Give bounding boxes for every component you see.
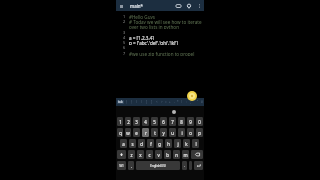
staticText: e [135, 130, 138, 136]
button[interactable]: a [120, 139, 127, 148]
button[interactable]: l [192, 139, 199, 148]
button[interactable]: v [155, 150, 162, 159]
staticText: ; [190, 100, 191, 104]
button[interactable]: 0 [196, 117, 203, 126]
staticText: , [131, 163, 132, 168]
button[interactable]: Enter [194, 161, 203, 170]
button[interactable]: Run [185, 2, 193, 10]
staticText: a = [1,2,3,4] [129, 35, 154, 40]
button[interactable]: = [164, 98, 168, 106]
button[interactable]: ) [139, 98, 144, 106]
button[interactable]: k [183, 139, 190, 148]
staticText: f [150, 141, 152, 147]
staticText: d [140, 141, 143, 147]
staticText: . [184, 163, 185, 168]
button[interactable]: 5 [151, 117, 158, 126]
staticText: j [177, 141, 179, 147]
button[interactable]: j [174, 139, 181, 148]
button[interactable]: u [169, 128, 176, 137]
button[interactable]: 6 [160, 117, 167, 126]
button[interactable]: ' [192, 98, 196, 106]
staticText: < [156, 100, 158, 104]
button[interactable]: 3 [133, 117, 140, 126]
staticText: u [171, 130, 174, 136]
staticText: x [139, 152, 142, 158]
staticText: English(US) [150, 164, 166, 168]
button[interactable]: 2 [125, 117, 131, 126]
button[interactable]: ; [188, 98, 192, 106]
button[interactable]: > [159, 98, 164, 106]
button[interactable]: More options [195, 2, 203, 10]
staticText: 6 [123, 45, 126, 50]
button[interactable]: / [180, 98, 184, 106]
button[interactable]: ] [149, 98, 154, 106]
button[interactable]: y [160, 128, 167, 137]
button[interactable]: d [138, 139, 145, 148]
button[interactable]: < [154, 98, 159, 106]
button[interactable]: x [137, 150, 144, 159]
button[interactable]: Save [174, 2, 182, 10]
button[interactable]: Keyboard settings [172, 110, 176, 114]
button[interactable]: p [196, 128, 203, 137]
button[interactable]: !#1 [117, 161, 126, 170]
staticText: 4 [144, 119, 147, 125]
button[interactable]: Shift [117, 150, 126, 159]
staticText: a [122, 141, 125, 147]
staticText: #Hello Guys [129, 14, 156, 19]
button[interactable]: 4 [142, 117, 149, 126]
button[interactable]: Menu [117, 2, 125, 10]
staticText: g [158, 141, 161, 147]
button[interactable]: i [178, 128, 185, 137]
staticText: tab [118, 100, 123, 104]
button[interactable]: # [200, 98, 204, 106]
staticText: n [175, 152, 178, 158]
staticText: y [162, 130, 165, 136]
button[interactable]: { [124, 98, 129, 106]
button[interactable]: " [196, 98, 200, 106]
button[interactable]: 1 [117, 117, 123, 126]
button[interactable]: z [128, 150, 135, 159]
staticText: i [181, 130, 183, 136]
button[interactable]: w [125, 128, 131, 137]
button[interactable]: o [187, 128, 194, 137]
button[interactable]: c [146, 150, 153, 159]
button[interactable]: * [176, 98, 180, 106]
button[interactable]: r [142, 128, 149, 137]
button[interactable]: b [164, 150, 171, 159]
button[interactable]: 8 [178, 117, 185, 126]
staticText: / [181, 100, 183, 104]
staticText: } [131, 100, 133, 104]
staticText: # Today we will see how to iterate [129, 19, 202, 24]
button[interactable]: } [129, 98, 134, 106]
button[interactable]: f [147, 139, 154, 148]
button[interactable]: tab [118, 100, 123, 104]
button[interactable]: , [128, 161, 134, 170]
button[interactable]: 9 [187, 117, 194, 126]
button[interactable] [189, 161, 192, 170]
button[interactable]: : [184, 98, 188, 106]
button[interactable]: [ [144, 98, 149, 106]
button[interactable]: m [182, 150, 189, 159]
staticText: = [165, 100, 167, 104]
staticText: 3 [135, 119, 138, 125]
button[interactable]: e [133, 128, 140, 137]
button[interactable]: + [168, 98, 172, 106]
button[interactable]: 7 [169, 117, 176, 126]
button[interactable]: g [156, 139, 163, 148]
button[interactable]: English(US) [136, 161, 180, 170]
button[interactable]: q [117, 128, 123, 137]
button[interactable]: . [182, 161, 187, 170]
staticText: 1 [119, 119, 122, 125]
button[interactable]: s [129, 139, 136, 148]
button[interactable]: ( [134, 98, 139, 106]
staticText: 8 [180, 119, 183, 125]
button[interactable]: t [151, 128, 158, 137]
staticText: 7 [123, 51, 126, 56]
button[interactable]: n [173, 150, 180, 159]
button[interactable]: h [165, 139, 172, 148]
button[interactable]: Run code [187, 91, 197, 101]
staticText: z [130, 152, 133, 158]
button[interactable]: Backspace [191, 150, 203, 159]
staticText: ' [194, 100, 195, 104]
